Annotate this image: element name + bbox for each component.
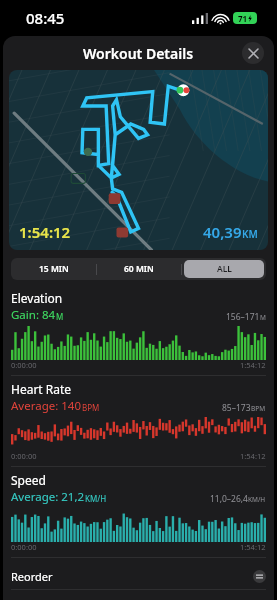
button[interactable]: Reorder [3, 563, 274, 589]
staticText: Average: 21,2 [11, 489, 85, 505]
staticText: 71 [238, 13, 248, 24]
staticText: KM/H [85, 493, 107, 504]
staticText: ALL [217, 263, 232, 275]
staticText: 40,39 [203, 222, 242, 242]
staticText: Reorder [11, 569, 53, 584]
staticText: M [56, 311, 64, 322]
staticText: 1:54:12 [240, 360, 266, 370]
staticText: M [260, 313, 266, 322]
staticText: Gain: 84 [11, 307, 56, 323]
staticText: Speed [11, 472, 46, 488]
staticText: 1:54:12 [240, 451, 266, 461]
staticText: 60 MIN [124, 263, 154, 275]
staticText: 0:00:00 [11, 360, 37, 370]
button[interactable]: ALL [184, 260, 264, 278]
staticText: 08:45 [26, 8, 65, 28]
staticText: KM [242, 227, 258, 241]
button[interactable]: 15 MIN [13, 260, 94, 278]
staticText: Workout Details [83, 44, 194, 63]
staticText: BPM [251, 404, 266, 413]
button[interactable]: 1:54:12 [9, 70, 268, 250]
staticText: 11,0–26,4 [210, 493, 248, 505]
staticText: 1:54:12 [240, 542, 266, 552]
other: Reorder [253, 570, 266, 583]
staticText: 85–173 [222, 402, 251, 414]
staticText: Heart Rate [11, 381, 72, 397]
staticText: BPM [82, 402, 100, 413]
staticText: KM/H [248, 495, 266, 504]
staticText: 0:00:00 [11, 451, 37, 461]
button[interactable]: 60 MIN [99, 260, 179, 278]
button[interactable]: Close [242, 42, 264, 64]
staticText: 1:54:12 [19, 222, 71, 242]
staticText: Average: 140 [11, 398, 82, 414]
staticText: Elevation [11, 290, 63, 306]
staticText: 15 MIN [39, 263, 69, 275]
staticText: 156–171 [226, 311, 260, 323]
staticText: 0:00:00 [11, 542, 37, 552]
